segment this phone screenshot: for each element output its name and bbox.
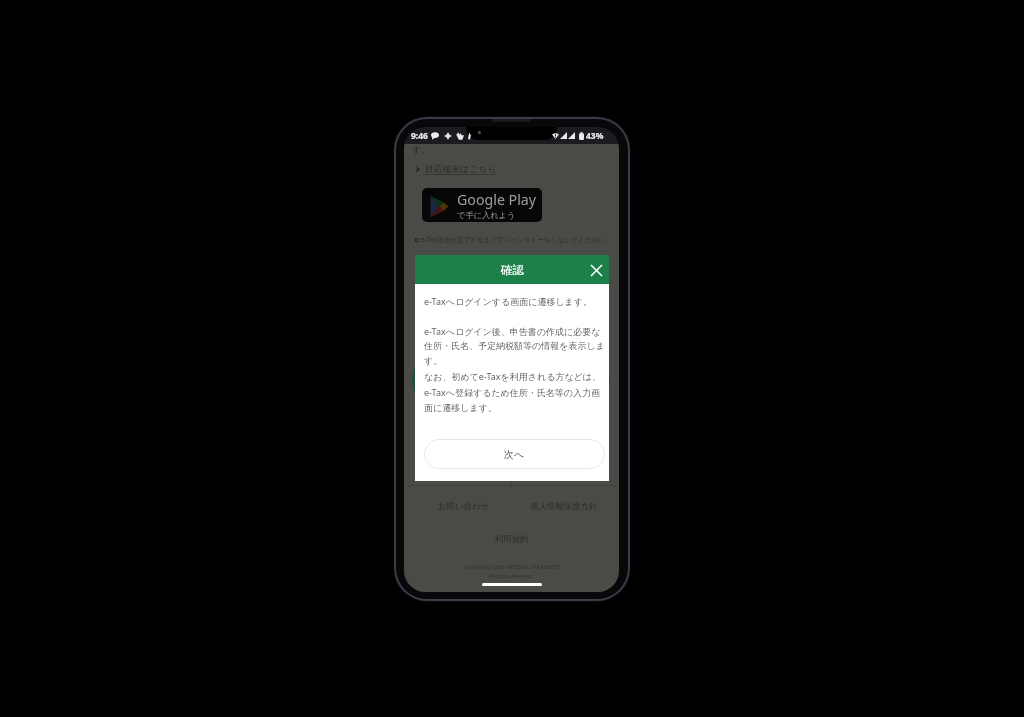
- staticText: e-Taxへログイン後、申告書の作成に必要な 住所・氏名、予定納税額等の情報を表…: [424, 325, 605, 414]
- staticText: で手に入れよう: [457, 210, 516, 220]
- staticText: す。: [412, 145, 430, 156]
- button[interactable]: 閉じる: [587, 261, 605, 279]
- button[interactable]: [412, 351, 610, 409]
- staticText: e-Tax送信が完了するまでアンインストールしないでください。: [421, 235, 612, 244]
- button[interactable]: 利用規約: [404, 534, 619, 545]
- staticText: All Rights Reserved.: [404, 573, 619, 580]
- staticText: 9:46: [411, 130, 428, 142]
- staticText: Copyright (c) 2026 NATIONAL TAX AGENCY: [404, 564, 619, 571]
- staticText: e-Taxへログインする画面に遷移します。: [424, 295, 593, 307]
- staticText: Google Play: [457, 190, 537, 209]
- staticText: 43%: [586, 130, 604, 142]
- button[interactable]: Google Play: [422, 188, 542, 222]
- button[interactable]: 次へ: [424, 439, 605, 469]
- staticText: 確認: [501, 263, 524, 277]
- staticText: 対応端末はこちら: [425, 164, 497, 175]
- button[interactable]: 対応端末はこちら: [414, 164, 497, 175]
- button[interactable]: お問い合わせ: [438, 501, 490, 512]
- staticText: 次へ: [504, 448, 525, 461]
- button[interactable]: 個人情報保護方針: [530, 501, 598, 512]
